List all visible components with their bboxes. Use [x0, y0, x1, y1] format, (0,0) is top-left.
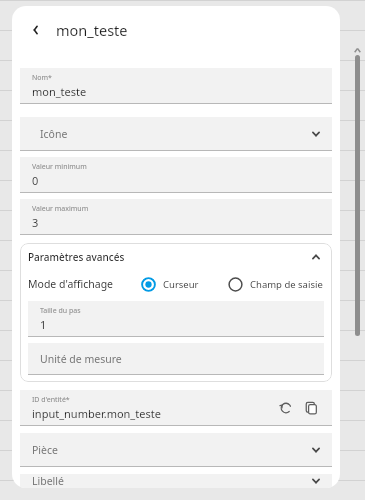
other: Copy [304, 401, 318, 415]
staticText: ID d'entité* [32, 395, 70, 405]
staticText: Mode d'affichage [28, 277, 114, 291]
staticText: mon_teste [32, 84, 87, 99]
staticText: input_number.mon_teste [32, 406, 161, 421]
staticText: Valeur minimum [32, 162, 87, 172]
button[interactable]: Back [25, 19, 47, 41]
button[interactable]: Copy [300, 397, 322, 419]
button[interactable]: Unité de mesure [28, 343, 324, 375]
staticText: Icône [40, 127, 310, 141]
staticText: 3 [32, 215, 39, 230]
staticText: 1 [40, 317, 47, 332]
button[interactable]: Icône [20, 117, 332, 151]
button[interactable]: Libellé [20, 474, 332, 488]
staticText: Champ de saisie [250, 278, 323, 291]
button[interactable]: Valeur minimum [20, 157, 332, 193]
staticText: Curseur [163, 278, 199, 291]
button[interactable]: Pièce [20, 433, 332, 467]
staticText: mon_teste [56, 20, 128, 40]
staticText: Valeur maximum [32, 204, 89, 214]
button[interactable]: Champ de saisie [228, 277, 323, 292]
button[interactable]: Taille du pas [28, 301, 324, 337]
button[interactable]: ID d'entité* [20, 390, 332, 426]
staticText: Libellé [32, 474, 310, 488]
staticText: Taille du pas [40, 306, 81, 316]
staticText: Unité de mesure [40, 352, 122, 366]
button[interactable]: Paramètres avancés [20, 243, 332, 271]
button[interactable]: Curseur [141, 277, 199, 292]
staticText: 0 [32, 173, 39, 188]
button[interactable]: Nom* [20, 68, 332, 104]
staticText: Pièce [32, 443, 310, 457]
staticText: Paramètres avancés [28, 250, 310, 264]
other: Restore [279, 401, 293, 415]
button[interactable]: Restore [275, 397, 297, 419]
staticText: Nom* [32, 73, 52, 83]
button[interactable]: Valeur maximum [20, 199, 332, 235]
